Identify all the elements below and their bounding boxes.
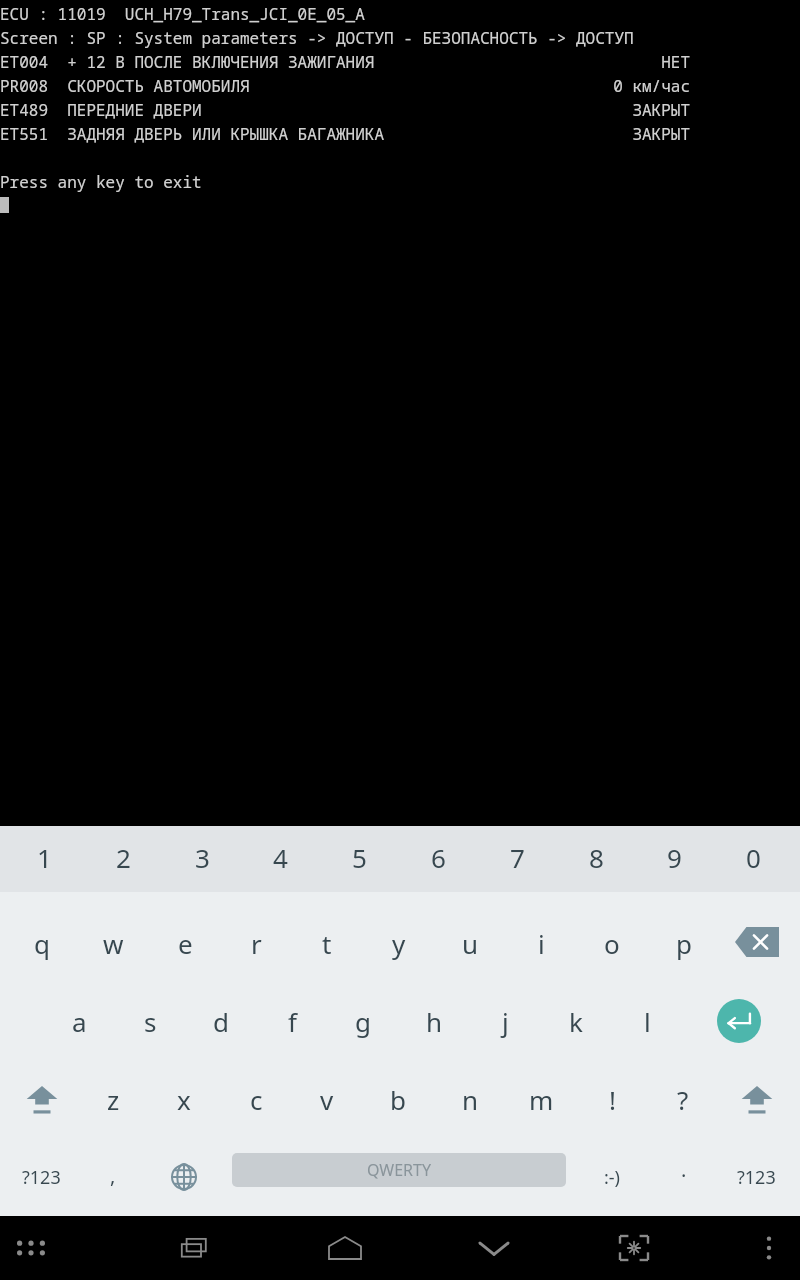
button[interactable]: k — [541, 986, 611, 1056]
button[interactable]: 1 — [9, 824, 79, 890]
staticText: ET551 ЗАДНЯЯ ДВЕРЬ ИЛИ КРЫШКА БАГАЖНИКА — [0, 123, 385, 145]
button[interactable]: 0 — [718, 824, 788, 890]
button[interactable]: g — [328, 986, 398, 1056]
button[interactable]: w — [78, 908, 148, 978]
button[interactable]: 7 — [482, 824, 552, 890]
button[interactable]: i — [506, 908, 576, 978]
button[interactable]: · — [649, 1140, 719, 1210]
button[interactable]: t — [292, 908, 362, 978]
button[interactable]: v — [292, 1064, 362, 1134]
button[interactable]: Backspace — [722, 907, 792, 977]
button[interactable]: ! — [577, 1064, 647, 1134]
button[interactable]: Shift — [7, 1064, 77, 1134]
staticText: :-) — [604, 1165, 621, 1190]
staticText: n — [462, 1082, 479, 1117]
button[interactable]: o — [577, 908, 647, 978]
staticText: y — [392, 926, 406, 961]
button[interactable]: p — [649, 908, 719, 978]
button[interactable]: m — [506, 1064, 576, 1134]
staticText: l — [644, 1004, 651, 1039]
button[interactable]: QWERTY — [232, 1153, 566, 1187]
staticText: b — [390, 1082, 406, 1117]
button[interactable]: f — [257, 986, 327, 1056]
staticText: Screen : SP : System parameters -> ДОСТУ… — [0, 27, 634, 49]
button[interactable]: h — [399, 986, 469, 1056]
staticText: f — [288, 1004, 297, 1039]
staticText: s — [144, 1004, 157, 1039]
button[interactable]: 9 — [639, 824, 709, 890]
button[interactable]: a — [44, 986, 114, 1056]
button[interactable]: c — [221, 1064, 291, 1134]
staticText: НЕТ — [0, 51, 690, 73]
button[interactable]: Home — [313, 1216, 377, 1280]
button[interactable]: 2 — [88, 824, 158, 890]
staticText: ET004 + 12 В ПОСЛЕ ВКЛЮЧЕНИЯ ЗАЖИГАНИЯ — [0, 51, 375, 73]
staticText: d — [213, 1004, 229, 1039]
staticText: x — [177, 1082, 191, 1117]
staticText: o — [604, 926, 620, 961]
staticText: v — [320, 1082, 334, 1117]
button[interactable]: u — [435, 908, 505, 978]
button[interactable]: b — [363, 1064, 433, 1134]
staticText: a — [72, 1004, 87, 1039]
button[interactable]: 6 — [403, 824, 473, 890]
button[interactable]: More options — [737, 1216, 800, 1280]
staticText: i — [538, 926, 545, 961]
staticText: ET489 ПЕРЕДНИЕ ДВЕРИ — [0, 99, 202, 121]
button[interactable]: Hide keyboard — [462, 1216, 526, 1280]
button[interactable]: e — [150, 908, 220, 978]
staticText: , — [110, 1162, 116, 1189]
staticText: ЗАКРЫТ — [0, 123, 690, 145]
staticText: 6 — [431, 840, 446, 875]
button[interactable]: 5 — [324, 824, 394, 890]
button[interactable]: Screenshot — [602, 1216, 666, 1280]
button[interactable]: s — [115, 986, 185, 1056]
button[interactable]: Change keyboard language — [149, 1142, 219, 1212]
button[interactable]: :-) — [577, 1142, 647, 1212]
button[interactable]: Enter — [704, 986, 774, 1056]
button[interactable]: j — [470, 986, 540, 1056]
staticText: 8 — [589, 840, 604, 875]
staticText: PR008 СКОРОСТЬ АВТОМОБИЛЯ — [0, 75, 250, 97]
button[interactable]: ? — [648, 1064, 718, 1134]
button[interactable]: q — [7, 908, 77, 978]
staticText: 1 — [37, 840, 52, 875]
button[interactable]: 4 — [245, 824, 315, 890]
button[interactable]: , — [78, 1140, 148, 1210]
staticText: ЗАКРЫТ — [0, 99, 690, 121]
staticText: p — [676, 926, 692, 961]
button[interactable]: 8 — [561, 824, 631, 890]
button[interactable]: l — [612, 986, 682, 1056]
button[interactable]: Shift — [722, 1064, 792, 1134]
staticText: k — [569, 1004, 583, 1039]
staticText: 0 км/час — [0, 75, 690, 97]
staticText: c — [250, 1082, 263, 1117]
staticText: ?123 — [737, 1165, 776, 1190]
staticText: h — [426, 1004, 443, 1039]
button[interactable]: ?123 — [6, 1142, 76, 1212]
button[interactable]: Apps — [0, 1216, 63, 1280]
button[interactable]: n — [435, 1064, 505, 1134]
button[interactable]: ?123 — [721, 1142, 791, 1212]
staticText: 3 — [195, 840, 210, 875]
staticText: 2 — [116, 840, 131, 875]
button[interactable]: 3 — [167, 824, 237, 890]
staticText: Press any key to exit — [0, 171, 202, 193]
staticText: j — [502, 1004, 509, 1039]
button[interactable]: y — [364, 908, 434, 978]
button[interactable]: r — [221, 908, 291, 978]
staticText: t — [322, 926, 332, 961]
staticText: e — [178, 926, 193, 961]
staticText: · — [681, 1162, 687, 1189]
staticText: 7 — [510, 840, 525, 875]
button[interactable]: Recents — [163, 1216, 227, 1280]
button[interactable]: d — [186, 986, 256, 1056]
staticText: z — [107, 1082, 120, 1117]
button[interactable]: x — [149, 1064, 219, 1134]
button[interactable]: z — [78, 1064, 148, 1134]
staticText: ? — [677, 1082, 689, 1117]
staticText: r — [251, 926, 262, 961]
staticText: q — [34, 926, 50, 961]
staticText: ECU : 11019 UCH_H79_Trans_JCI_0E_05_A — [0, 3, 365, 25]
staticText: 4 — [273, 840, 288, 875]
